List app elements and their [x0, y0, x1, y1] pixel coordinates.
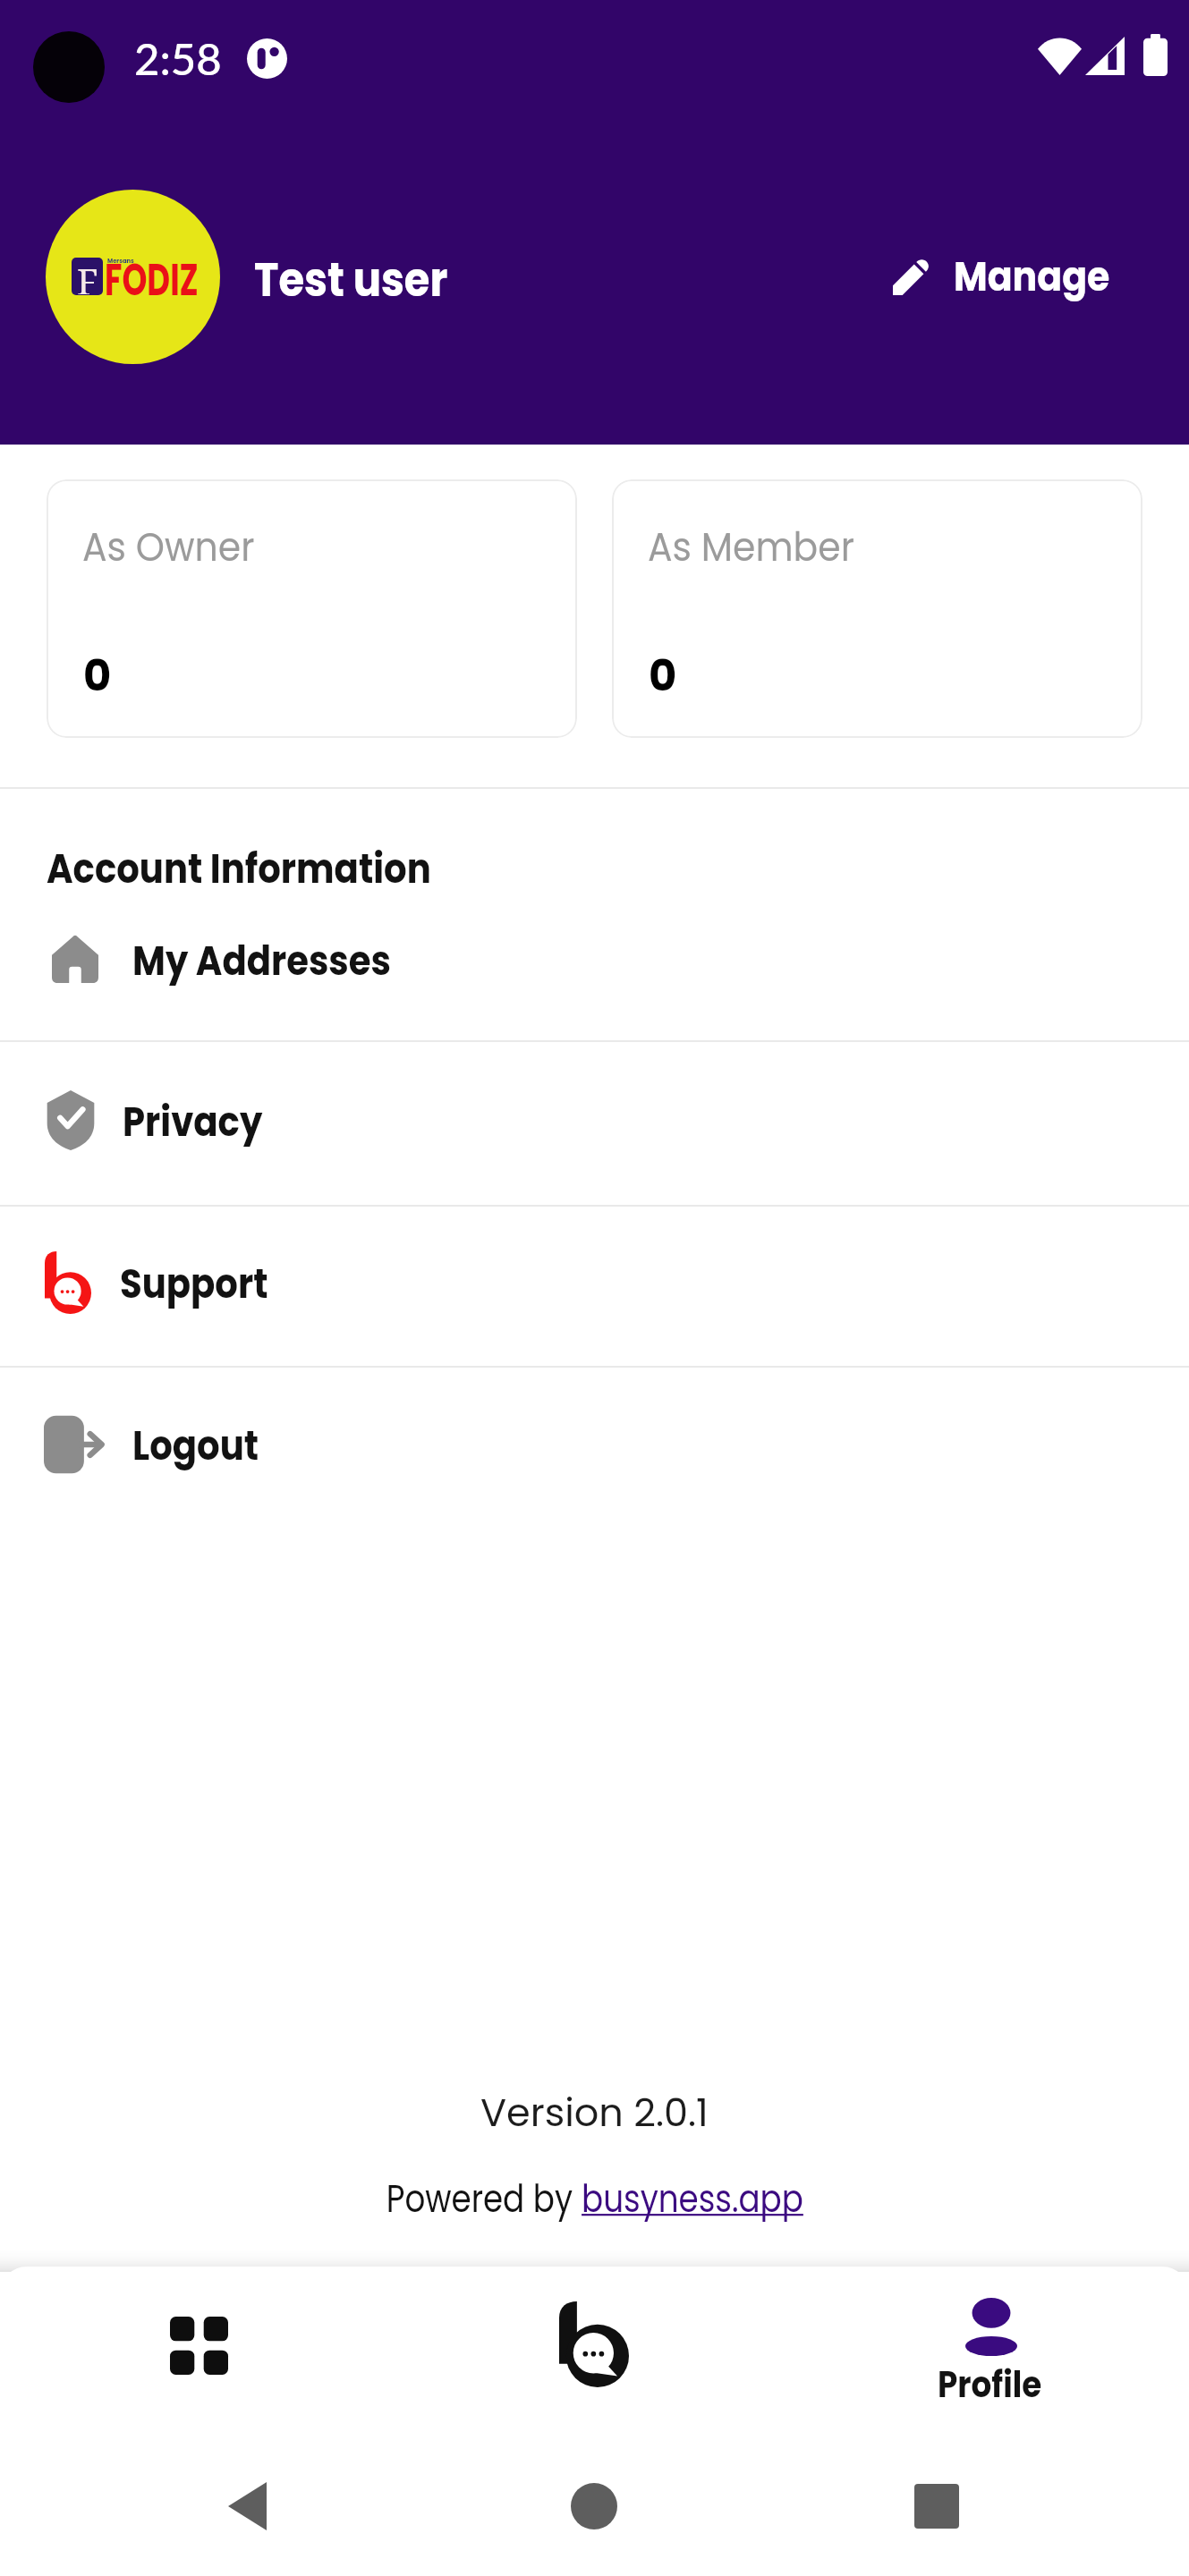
staticText: Manage: [954, 248, 1110, 305]
staticText: My Addresses: [132, 933, 391, 989]
button[interactable]: Chat: [488, 2267, 702, 2481]
button[interactable]: Profile: [884, 2267, 1099, 2481]
staticText: Privacy: [123, 1094, 263, 1150]
button[interactable]: busyness.app: [582, 2172, 804, 2225]
staticText: Account Information: [47, 841, 432, 897]
button[interactable]: Profile photo: [46, 190, 220, 364]
staticText: Test user: [254, 247, 448, 312]
staticText: FODIZ: [105, 249, 199, 311]
button[interactable]: My Addresses: [0, 878, 1189, 1041]
button[interactable]: As Member: [612, 479, 1142, 738]
button[interactable]: Home: [495, 2442, 693, 2571]
button[interactable]: Recent apps: [837, 2442, 1036, 2571]
staticText: Mersans: [107, 257, 134, 265]
staticText: F: [77, 258, 98, 294]
staticText: Support: [120, 1256, 268, 1312]
button[interactable]: Support: [0, 1201, 1189, 1364]
staticText: Powered by: [386, 2172, 582, 2225]
staticText: Profile: [938, 2360, 1042, 2410]
button[interactable]: Back: [149, 2442, 347, 2571]
button[interactable]: Manage: [893, 248, 1129, 305]
staticText: Logout: [132, 1418, 259, 1474]
button[interactable]: As Owner: [47, 479, 577, 738]
button[interactable]: Dashboard: [91, 2267, 306, 2481]
button[interactable]: Privacy: [0, 1039, 1189, 1202]
staticText: As Owner: [82, 520, 255, 575]
staticText: 0: [649, 646, 677, 706]
staticText: 0: [83, 646, 112, 706]
button[interactable]: Logout: [0, 1363, 1189, 1526]
staticText: 2:58: [134, 32, 222, 85]
staticText: Version 2.0.1: [480, 2086, 709, 2140]
staticText: As Member: [648, 520, 855, 575]
